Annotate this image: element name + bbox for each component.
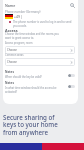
staticText: Access xyxy=(5,28,18,33)
staticText: +49 | xyxy=(14,14,23,19)
staticText: Phone number (Germany) xyxy=(5,10,41,14)
staticText: Access program, room xyxy=(5,41,33,45)
staticText: Name xyxy=(5,3,16,8)
button[interactable]: Search xyxy=(69,2,76,9)
staticText: Notes xyxy=(5,81,14,85)
button[interactable]: Choose xyxy=(5,46,75,54)
staticText: When should the key be valid? xyxy=(5,75,42,79)
staticText: Choose the time window and the rooms you… xyxy=(5,32,63,40)
staticText: Common areas xyxy=(5,53,24,57)
staticText: Choose xyxy=(7,60,17,64)
button[interactable]: Choose xyxy=(5,58,75,66)
staticText: Choose xyxy=(7,48,17,52)
button[interactable]: Notes xyxy=(5,70,75,79)
button[interactable]: Notes xyxy=(5,81,75,94)
staticText: Secure sharing of keys to your home from… xyxy=(3,113,58,137)
staticText: In what time window should the access be… xyxy=(5,86,65,94)
staticText: Notes xyxy=(5,70,14,74)
staticText: The phone number is used to log in and t… xyxy=(13,20,75,27)
